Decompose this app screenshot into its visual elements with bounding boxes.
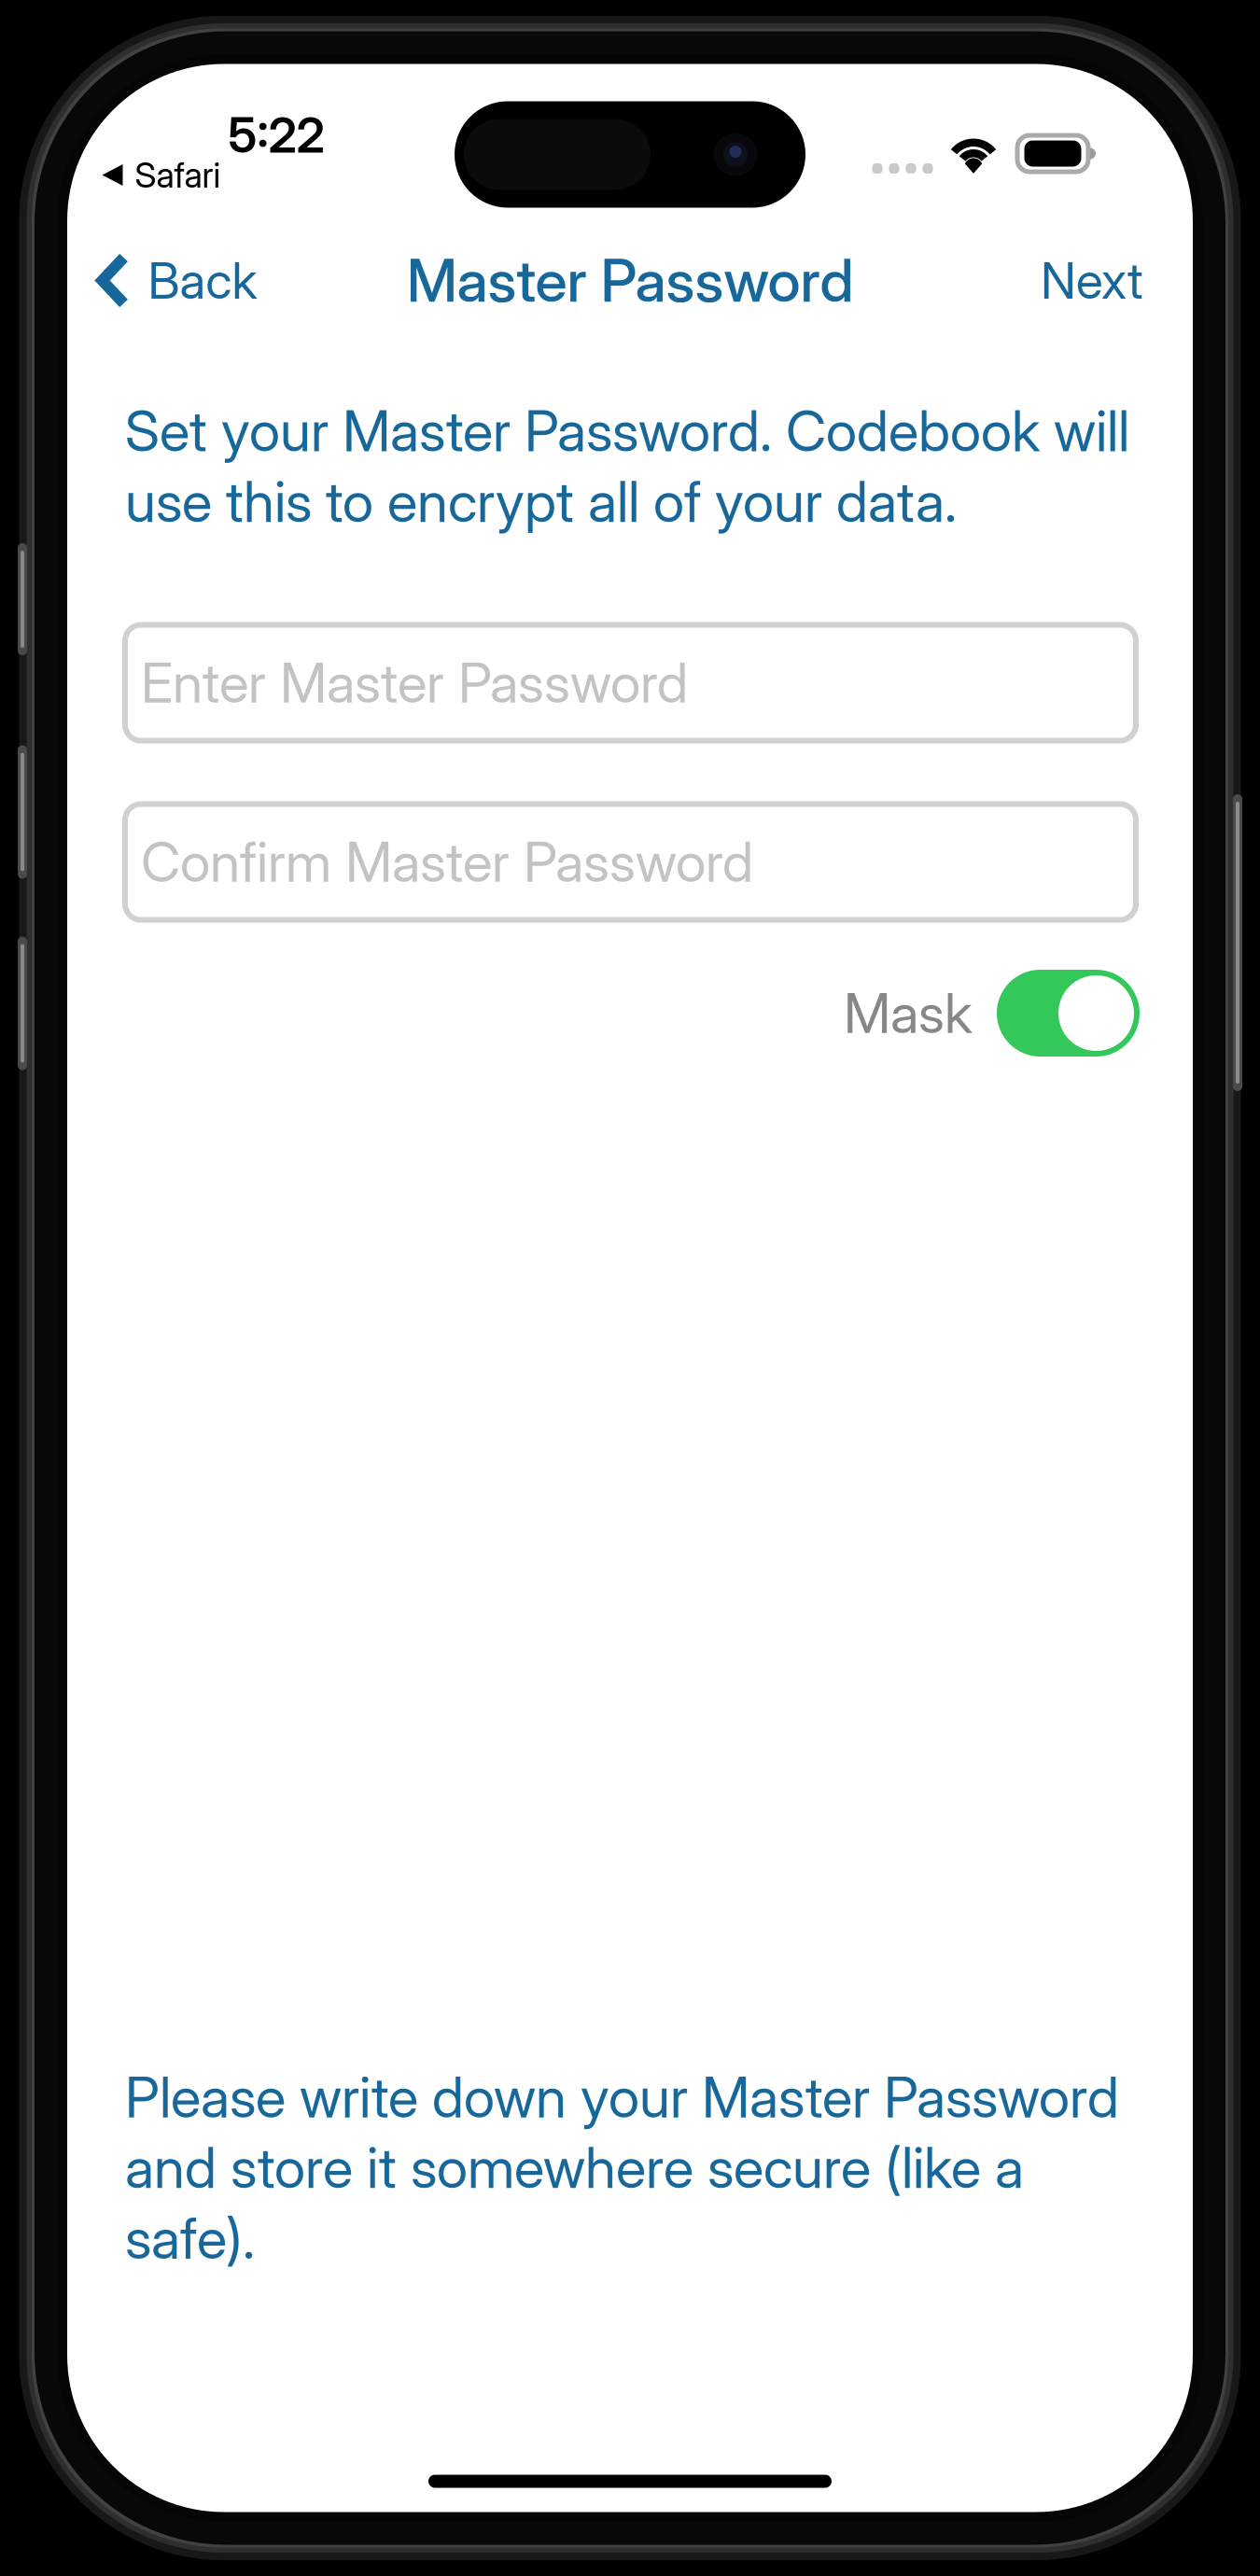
staticText: Please write down your Master Password a… <box>125 2063 1119 2272</box>
staticText: 5:22 <box>228 105 324 164</box>
staticText: Next <box>1041 250 1143 311</box>
staticText: Set your Master Password. Codebook will … <box>125 397 1129 535</box>
staticText: Confirm Master Password <box>141 829 753 895</box>
staticText: Mask <box>844 980 973 1046</box>
button[interactable]: Safari <box>102 148 221 202</box>
staticText: Back <box>148 250 257 311</box>
staticText: Enter Master Password <box>141 650 688 716</box>
button[interactable]: Mask <box>844 960 1140 1066</box>
button[interactable]: Confirm Master Password <box>125 804 1136 920</box>
button[interactable]: Next <box>1020 232 1164 329</box>
staticText: Master Password <box>406 245 854 316</box>
staticText: Safari <box>135 154 221 196</box>
button[interactable]: Enter Master Password <box>125 625 1136 741</box>
button[interactable]: Back <box>90 237 263 324</box>
